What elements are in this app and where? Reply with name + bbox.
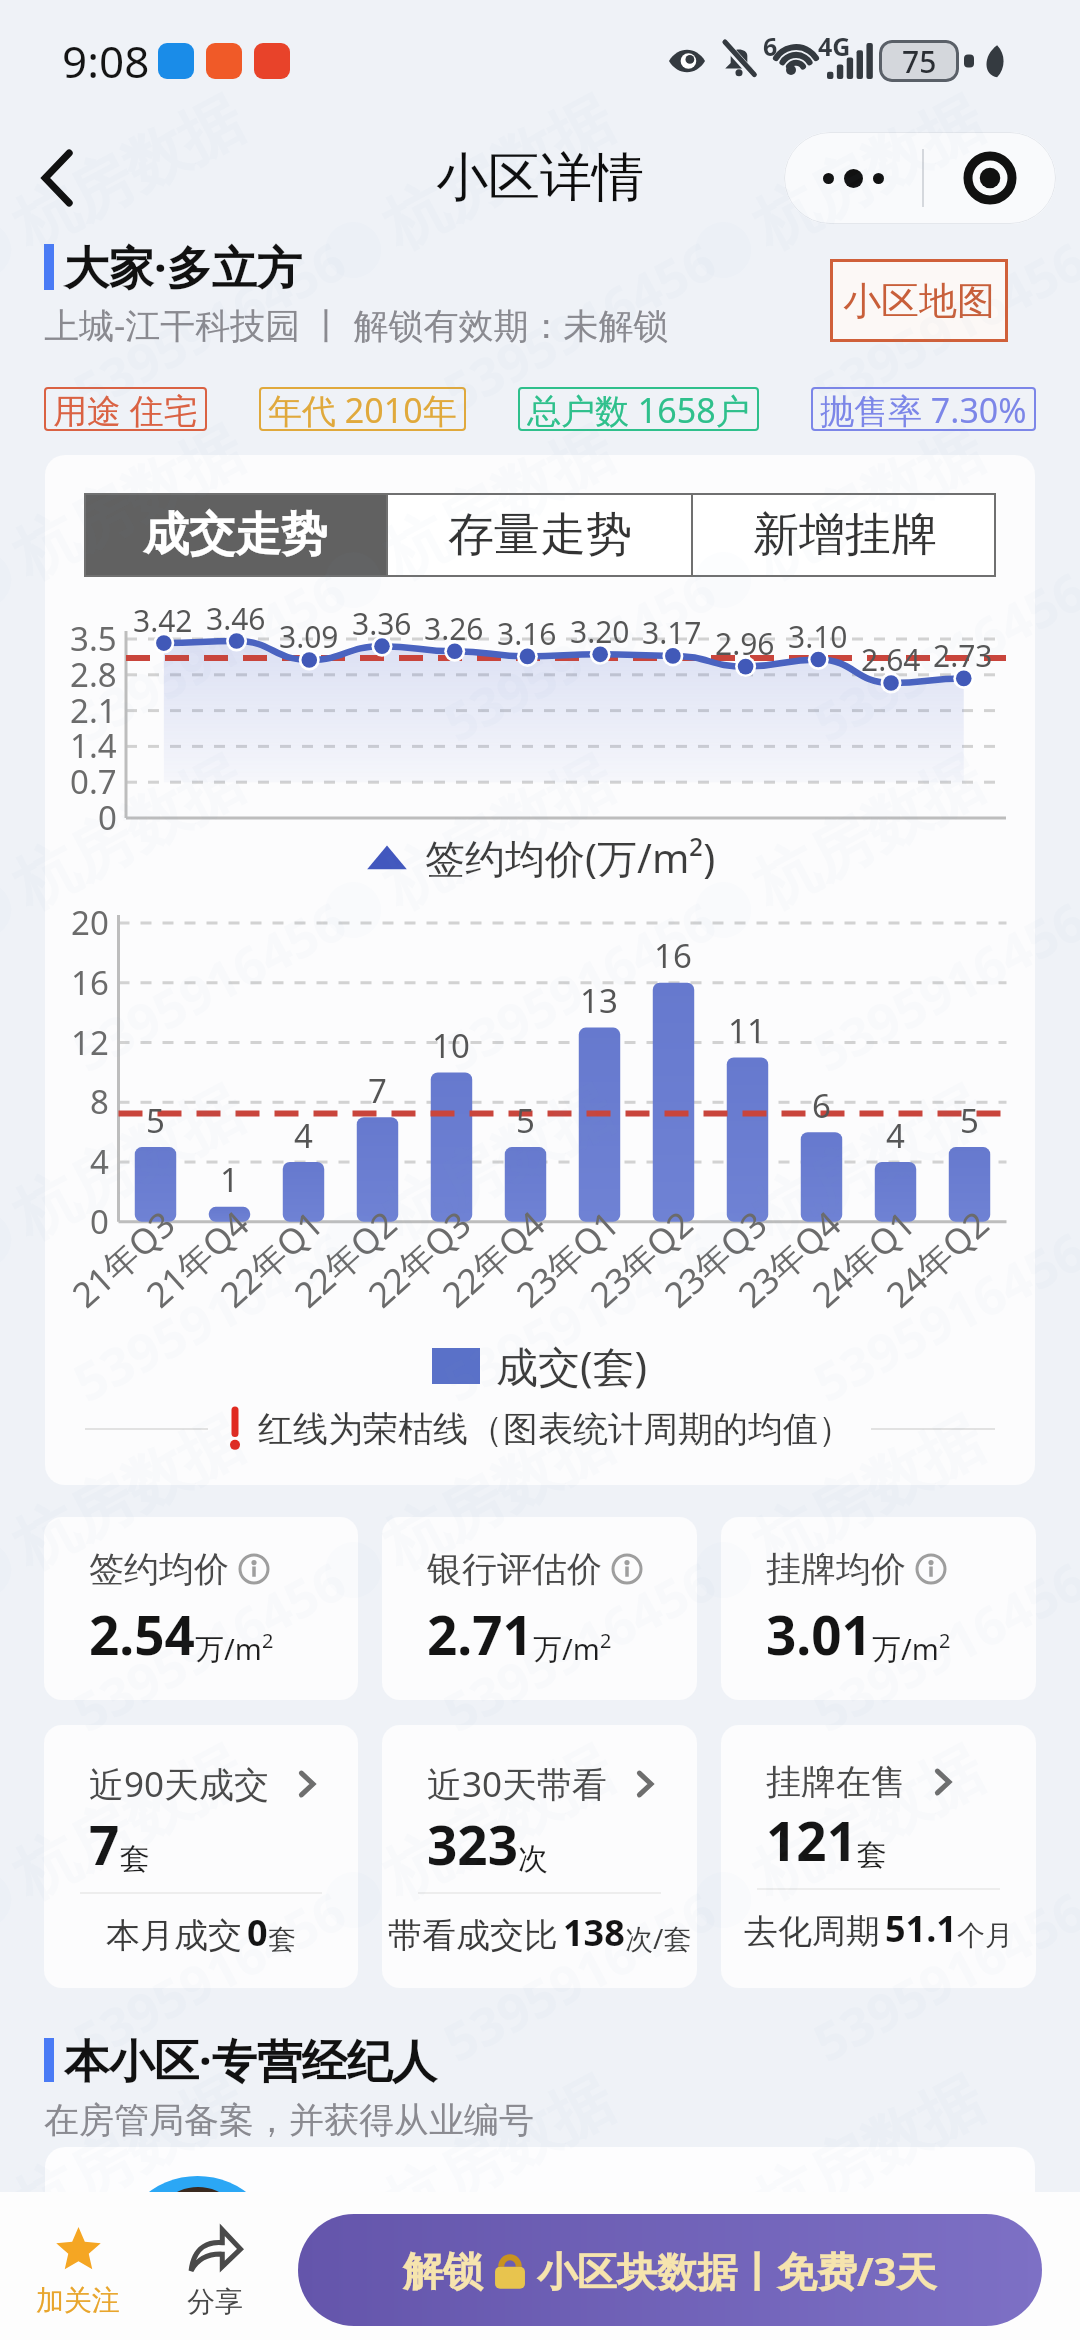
staticText: 个月: [957, 1918, 1013, 1953]
staticText: 323: [427, 1808, 518, 1880]
staticText: 杭房数据: [740, 2060, 996, 2246]
staticText: 杭房数据: [0, 1070, 256, 1256]
staticText: 杭房数据: [740, 1070, 996, 1256]
staticText: 挂牌在售: [766, 1760, 906, 1804]
staticText: 2.71: [427, 1598, 533, 1670]
staticText: 杭房数据: [740, 1730, 996, 1916]
staticText: /m: [224, 1629, 262, 1668]
staticText: 7: [368, 1068, 387, 1113]
button[interactable]: 挂牌在售: [721, 1725, 1036, 1988]
staticText: 新增挂牌: [753, 506, 937, 564]
staticText: 6: [763, 29, 778, 63]
staticText: 2.96: [715, 623, 775, 664]
staticText: 大家·多立方: [64, 236, 302, 297]
staticText: /m: [562, 1629, 600, 1668]
button[interactable]: 挂牌均价: [721, 1517, 1036, 1700]
button[interactable]: 新增挂牌: [693, 493, 996, 577]
button[interactable]: 年代 2010年: [259, 387, 466, 431]
button[interactable]: 加关注: [32, 2227, 124, 2327]
staticText: 16: [654, 933, 692, 978]
staticText: 银行评估价: [427, 1547, 602, 1591]
staticText: 杭房数据: [0, 740, 256, 926]
staticText: 3.16: [497, 613, 557, 654]
staticText: 抛售率 7.30%: [820, 387, 1027, 431]
staticText: 11: [728, 1008, 766, 1053]
staticText: 5395916456: [431, 1544, 727, 1747]
staticText: 3.20: [570, 611, 630, 652]
staticText: 2: [939, 1627, 951, 1654]
staticText: 23年Q1: [506, 1200, 629, 1318]
staticText: 万: [872, 1631, 901, 1668]
staticText: 3.36: [352, 603, 412, 644]
staticText: 1: [220, 1157, 239, 1202]
button[interactable]: 小区地图: [830, 259, 1008, 342]
staticText: 5395916456: [801, 1874, 1080, 2077]
button[interactable]: Close: [924, 132, 1056, 224]
staticText: /m: [901, 1629, 939, 1668]
staticText: 5395916456: [61, 2204, 357, 2340]
staticText: 3.26: [424, 608, 484, 649]
staticText: 1.4: [70, 723, 117, 768]
staticText: 套: [268, 1922, 296, 1957]
staticText: 75: [902, 41, 937, 82]
staticText: 次/套: [625, 1919, 692, 1957]
button[interactable]: 成交走势: [84, 493, 386, 577]
staticText: 5395916456: [801, 884, 1080, 1087]
staticText: 套: [857, 1836, 887, 1874]
button[interactable]: Back: [20, 140, 96, 216]
staticText: 总户数 1658户: [527, 387, 750, 431]
button[interactable]: 近30天带看: [382, 1725, 697, 1988]
button[interactable]: 银行评估价: [382, 1517, 697, 1700]
button[interactable]: 用途 住宅: [44, 387, 207, 431]
staticText: 小区详情: [436, 145, 644, 211]
staticText: 0.7: [70, 759, 117, 804]
staticText: 5: [146, 1098, 165, 1143]
staticText: 杭房数据: [740, 80, 996, 266]
staticText: 23年Q2: [580, 1200, 703, 1318]
staticText: 5: [960, 1098, 979, 1143]
button[interactable]: More options: [784, 132, 922, 224]
staticText: 5395916456: [61, 884, 357, 1087]
staticText: 20: [71, 900, 109, 945]
staticText: 2.54: [89, 1598, 195, 1670]
staticText: 万: [533, 1631, 562, 1668]
staticText: 杭房数据: [370, 740, 626, 926]
staticText: 杭房数据: [370, 2060, 626, 2246]
staticText: 4: [90, 1139, 109, 1184]
staticText: 5395916456: [431, 1874, 727, 2077]
staticText: 5395916456: [61, 1874, 357, 2077]
staticText: 杭房数据: [0, 2060, 256, 2246]
staticText: 9:08: [62, 31, 150, 91]
staticText: 杭房数据: [0, 1400, 256, 1586]
staticText: 2.73: [933, 635, 993, 676]
staticText: 本月成交: [106, 1914, 242, 1957]
button[interactable]: 近90天成交: [44, 1725, 358, 1988]
button[interactable]: 总户数 1658户: [518, 387, 759, 431]
staticText: 签约均价(万/m²): [425, 830, 716, 884]
staticText: 23年Q3: [654, 1200, 777, 1318]
staticText: 5: [516, 1098, 535, 1143]
staticText: 次: [518, 1840, 548, 1878]
staticText: 套: [120, 1840, 150, 1878]
staticText: 近30天带看: [427, 1760, 608, 1808]
staticText: 5395916456: [801, 224, 1080, 427]
staticText: 杭房数据: [370, 1070, 626, 1256]
staticText: 2.64: [861, 639, 921, 680]
staticText: 杭房数据: [0, 80, 256, 266]
button[interactable]: 抛售率 7.30%: [811, 387, 1036, 431]
staticText: 21年Q3: [62, 1200, 185, 1318]
staticText: 2: [262, 1627, 274, 1654]
staticText: 小区地图: [843, 277, 995, 325]
staticText: 0: [98, 795, 117, 840]
staticText: 5395916456: [431, 884, 727, 1087]
staticText: 成交走势: [143, 506, 327, 564]
staticText: 6: [812, 1083, 831, 1128]
staticText: 签约均价: [89, 1547, 229, 1591]
staticText: 5395916456: [801, 2204, 1080, 2340]
button[interactable]: 解锁: [298, 2214, 1042, 2326]
button[interactable]: 分享: [169, 2227, 261, 2327]
staticText: 年代 2010年: [268, 387, 457, 431]
staticText: 近90天成交: [89, 1760, 270, 1808]
button[interactable]: 签约均价: [44, 1517, 358, 1700]
button[interactable]: 存量走势: [388, 493, 691, 577]
